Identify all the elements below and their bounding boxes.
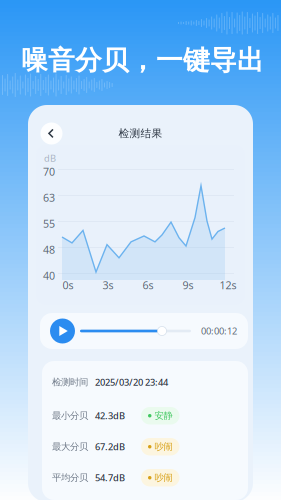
staticText: 67.2dB bbox=[95, 440, 125, 453]
staticText: 70 bbox=[43, 164, 55, 179]
staticText: 检测时间 bbox=[52, 376, 88, 388]
staticText: 噪音分贝，一键导出 bbox=[21, 44, 264, 77]
staticText: 9s bbox=[182, 278, 193, 292]
staticText: 48 bbox=[43, 242, 55, 257]
staticText: 00:00:12 bbox=[201, 325, 237, 337]
staticText: 12s bbox=[219, 278, 236, 292]
staticText: 安静 bbox=[154, 410, 172, 421]
staticText: 平均分贝 bbox=[52, 472, 88, 483]
staticText: 0s bbox=[62, 278, 73, 292]
staticText: 最小分贝 bbox=[52, 410, 88, 421]
staticText: 吵闹 bbox=[154, 441, 172, 452]
staticText: dB bbox=[44, 152, 56, 164]
staticText: 54.7dB bbox=[95, 471, 125, 484]
staticText: 吵闹 bbox=[154, 472, 172, 483]
staticText: 63 bbox=[43, 190, 55, 205]
staticText: 检测结果 bbox=[118, 127, 162, 140]
button[interactable]: Back bbox=[40, 122, 62, 144]
staticText: 40 bbox=[43, 268, 55, 283]
staticText: 42.3dB bbox=[95, 409, 125, 422]
staticText: 3s bbox=[102, 278, 113, 292]
staticText: 55 bbox=[43, 216, 55, 231]
staticText: 2025/03/20 23:44 bbox=[95, 376, 168, 388]
staticText: 6s bbox=[142, 278, 153, 292]
button[interactable]: Play bbox=[50, 318, 75, 343]
staticText: 最大分贝 bbox=[52, 441, 88, 452]
